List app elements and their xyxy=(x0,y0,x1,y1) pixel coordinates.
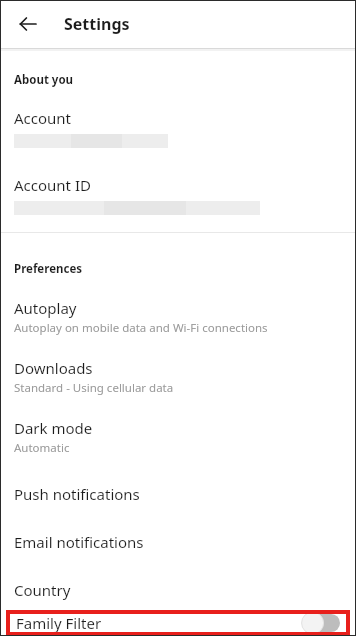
staticText: Family Filter xyxy=(16,613,102,633)
button[interactable]: Downloads xyxy=(0,358,356,396)
staticText: Standard - Using cellular data xyxy=(14,380,174,396)
staticText: Account ID xyxy=(14,175,91,195)
staticText: Settings xyxy=(64,13,130,35)
button[interactable]: Email notifications xyxy=(0,532,356,552)
staticText: Automatic xyxy=(14,440,70,456)
staticText: Autoplay on mobile data and Wi-Fi connec… xyxy=(14,320,268,336)
button[interactable]: Account xyxy=(0,108,356,148)
button[interactable]: Country xyxy=(0,580,356,600)
button[interactable]: Push notifications xyxy=(0,484,356,504)
staticText: Account xyxy=(14,108,72,128)
button[interactable]: Autoplay xyxy=(0,298,356,336)
staticText: Autoplay xyxy=(14,298,77,318)
staticText: About you xyxy=(14,72,74,88)
staticText: Country xyxy=(14,580,71,600)
staticText: Downloads xyxy=(14,358,93,378)
button[interactable]: Family Filter xyxy=(6,610,350,636)
button[interactable]: Back xyxy=(10,6,46,42)
button[interactable]: Dark mode xyxy=(0,418,356,456)
button[interactable]: Family Filter toggle xyxy=(300,612,340,634)
staticText: Push notifications xyxy=(14,484,140,504)
staticText: Dark mode xyxy=(14,418,93,438)
staticText: Preferences xyxy=(14,261,83,277)
staticText: Email notifications xyxy=(14,532,144,552)
button[interactable]: Account ID xyxy=(0,175,356,215)
